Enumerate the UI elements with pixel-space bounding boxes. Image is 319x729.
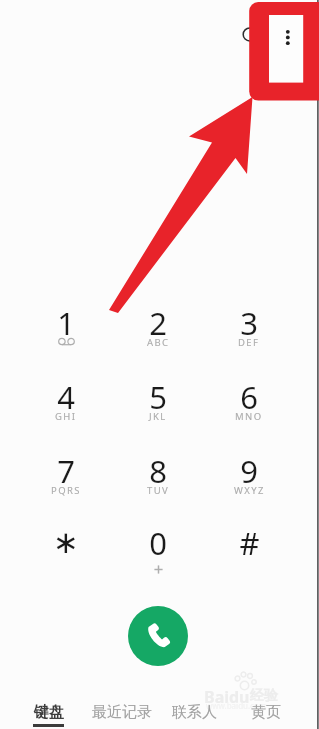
staticText: TUV — [147, 484, 170, 497]
staticText: PQRS — [51, 484, 81, 497]
staticText: Baidu — [204, 686, 250, 708]
staticText: 最近记录 — [92, 703, 152, 722]
staticText: ∗ — [53, 524, 79, 560]
button[interactable]: 7 — [23, 450, 109, 512]
button[interactable]: 联系人 — [166, 700, 223, 729]
staticText: 1 — [57, 302, 75, 342]
button[interactable]: Call — [128, 606, 188, 666]
button[interactable]: More options — [278, 24, 298, 52]
staticText: 6 — [240, 376, 258, 416]
button[interactable]: 最近记录 — [86, 700, 158, 729]
staticText: GHI — [55, 410, 77, 423]
staticText: DEF — [238, 336, 260, 349]
staticText: 键盘 — [34, 703, 64, 722]
button[interactable]: 1 — [23, 302, 109, 364]
button[interactable]: 0 — [115, 522, 201, 584]
button[interactable]: ∗ — [23, 522, 109, 584]
button[interactable]: Search — [238, 22, 264, 48]
button[interactable]: 4 — [23, 376, 109, 438]
button[interactable]: 键盘 — [27, 700, 69, 729]
staticText: 联系人 — [172, 703, 217, 722]
staticText: MNO — [235, 410, 263, 423]
staticText: 3 — [240, 302, 258, 342]
button[interactable]: # — [206, 522, 292, 584]
staticText: 黄页 — [251, 703, 281, 722]
staticText: www.baidu.com — [206, 700, 267, 711]
staticText: 7 — [57, 450, 75, 490]
staticText: ABC — [147, 336, 170, 349]
staticText: JKL — [149, 410, 167, 423]
staticText: 5 — [149, 376, 167, 416]
button[interactable]: 5 — [115, 376, 201, 438]
staticText: 2 — [149, 302, 167, 342]
button[interactable]: 6 — [206, 376, 292, 438]
button[interactable]: 黄页 — [245, 700, 287, 729]
staticText: 4 — [57, 376, 75, 416]
staticText: # — [239, 522, 260, 562]
button[interactable]: 3 — [206, 302, 292, 364]
staticText: WXYZ — [234, 484, 265, 497]
staticText: 9 — [240, 450, 258, 490]
staticText: 0 — [149, 522, 167, 562]
staticText: 经验 — [250, 687, 278, 705]
staticText: 8 — [149, 450, 167, 490]
button[interactable]: 9 — [206, 450, 292, 512]
button[interactable]: 8 — [115, 450, 201, 512]
button[interactable]: 2 — [115, 302, 201, 364]
